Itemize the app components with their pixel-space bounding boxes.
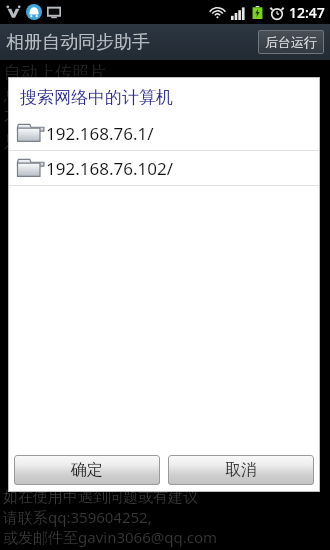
button[interactable]: 192.168.76.1/ — [8, 116, 320, 150]
staticText: 总是默默的在后台运行 — [4, 85, 174, 106]
staticText: 192.168.76.102/ — [46, 157, 173, 180]
staticText: 192.168.76.1/ — [46, 122, 154, 145]
button[interactable]: 192.168.76.102/ — [8, 151, 320, 185]
staticText: 如在使用中遇到问题或有建议 — [3, 488, 198, 507]
staticText: 自动上传照片 — [4, 62, 106, 83]
staticText: 确定 — [71, 460, 103, 480]
staticText: 后台运行 — [265, 34, 317, 50]
button[interactable]: 确定 — [14, 455, 160, 485]
button[interactable]: 后台运行 — [258, 30, 324, 54]
staticText: 请联系qq:359604252, — [3, 507, 152, 527]
staticText: 相册自动同步助手 — [6, 31, 150, 54]
staticText: 取消 — [225, 460, 257, 480]
staticText: 或发邮件至gavin3066@qq.com — [3, 527, 217, 547]
staticText: 不需要您的任何操作 — [4, 108, 157, 129]
staticText: 只要设置一次即可 — [4, 131, 140, 152]
button[interactable]: 取消 — [168, 455, 314, 485]
staticText: 12:47 — [289, 3, 325, 22]
staticText: 搜索网络中的计算机 — [20, 87, 173, 108]
